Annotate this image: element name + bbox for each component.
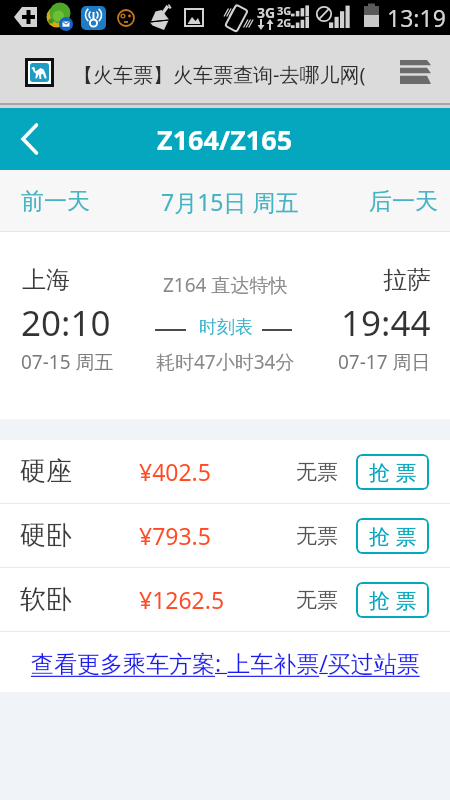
button[interactable]: 查看更多乘车方案: 上车补票/买过站票 [0, 632, 450, 692]
staticText: 3G [277, 3, 292, 18]
staticText: ¥402.5 [139, 456, 211, 487]
staticText: 7月15日 周五 [161, 186, 299, 217]
staticText: 无票 [296, 459, 338, 485]
button[interactable]: Back [0, 108, 66, 170]
staticText: 查看更多乘车方案: 上车补票/买过站票 [31, 647, 420, 678]
staticText: ¥793.5 [139, 520, 211, 551]
staticText: 耗时47小时34分 [156, 349, 295, 375]
button[interactable]: 硬座 [0, 440, 450, 503]
staticText: 07-17 周日 [338, 349, 431, 375]
staticText: 抢 票 [369, 458, 417, 487]
staticText: Z164/Z165 [157, 121, 293, 158]
staticText: 【火车票】火车票查询-去哪儿网( [73, 61, 366, 88]
button[interactable]: 抢 票 [356, 454, 429, 490]
staticText: 19:44 [341, 299, 431, 347]
staticText: 前一天 [21, 187, 90, 216]
button[interactable]: 软卧 [0, 568, 450, 631]
staticText: 硬座 [20, 455, 72, 488]
staticText: 后一天 [369, 187, 438, 216]
button[interactable]: Menu [392, 60, 436, 94]
staticText: 抢 票 [369, 586, 417, 615]
button[interactable]: 后一天 [348, 170, 450, 232]
staticText: 13:19 [387, 2, 446, 33]
staticText: 上海 [22, 265, 70, 295]
staticText: 时刻表 [199, 316, 253, 339]
staticText: 20:10 [21, 299, 111, 347]
staticText: 拉萨 [383, 265, 431, 295]
button[interactable]: Site icon [25, 58, 54, 87]
staticText: Z164 直达特快 [163, 272, 288, 298]
button[interactable]: 前一天 [0, 170, 110, 232]
staticText: 抢 票 [369, 522, 417, 551]
button[interactable]: 抢 票 [356, 582, 429, 618]
button[interactable]: 时刻表 [195, 314, 257, 340]
staticText: 无票 [296, 587, 338, 613]
staticText: 硬卧 [20, 519, 72, 552]
staticText: 无票 [296, 523, 338, 549]
staticText: ¥1262.5 [139, 584, 225, 615]
button[interactable]: 7月15日 周五 [145, 170, 315, 232]
button[interactable]: 抢 票 [356, 518, 429, 554]
staticText: 3G [257, 3, 276, 22]
staticText: 2G [277, 15, 292, 30]
button[interactable]: 硬卧 [0, 504, 450, 567]
staticText: 07-15 周五 [21, 349, 114, 375]
staticText: 软卧 [20, 583, 72, 616]
